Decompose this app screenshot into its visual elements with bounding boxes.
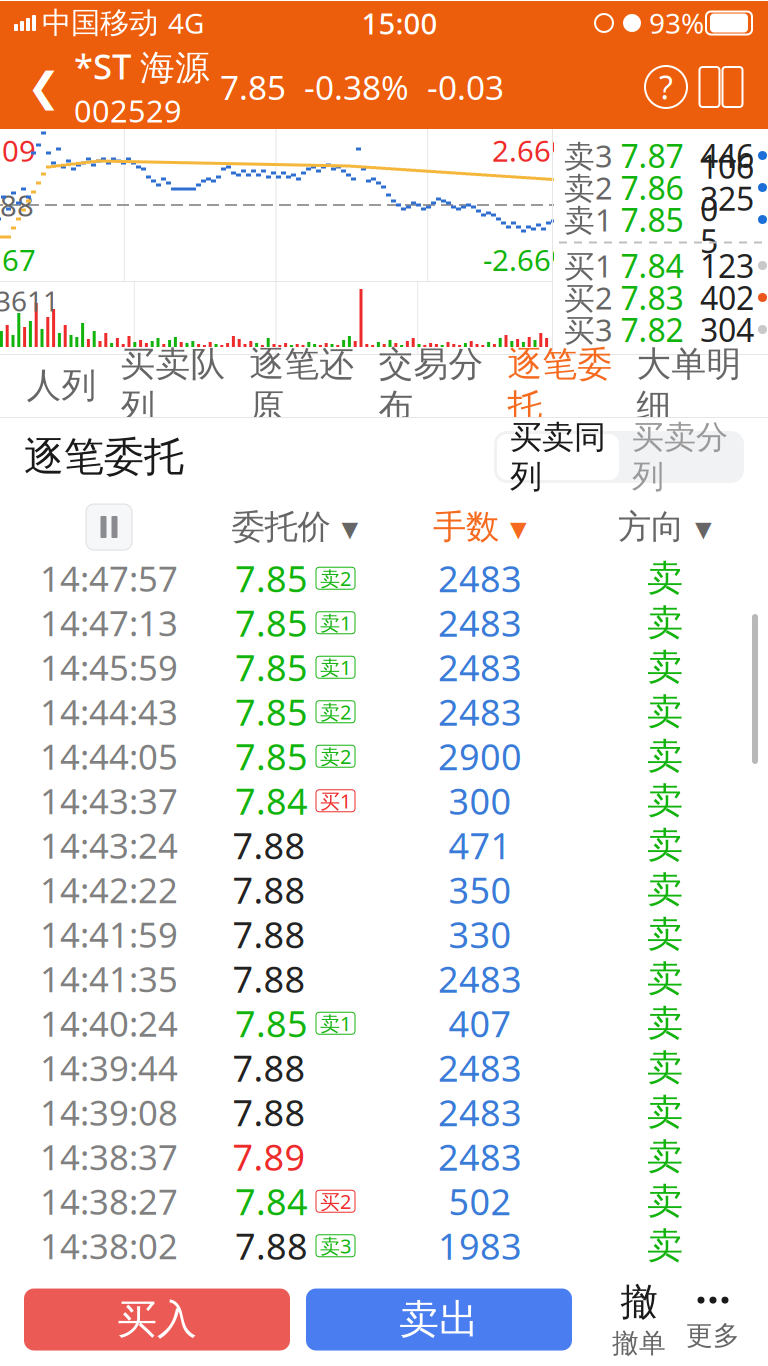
staticText: 330 [448, 910, 511, 958]
button[interactable]: 买入 [24, 1288, 290, 1350]
staticText: 002529 [74, 90, 182, 131]
staticText: 卖2 [320, 698, 351, 725]
staticText: 交易分布 [378, 343, 483, 428]
staticText: 卖2 [564, 167, 613, 208]
staticText: 7.85 [235, 999, 308, 1047]
staticText: 买卖队列 [120, 343, 225, 428]
staticText: 卖3 [564, 135, 613, 176]
staticText: 4G [168, 4, 204, 42]
staticText: 3611 [0, 282, 59, 319]
staticText: 卖2 [320, 565, 351, 592]
staticText: 14:47:57 [40, 555, 178, 601]
staticText: 更多 [686, 1319, 740, 1352]
staticText: 2900 [438, 732, 522, 780]
staticText: 卖 [647, 690, 683, 734]
button[interactable]: 返回 [14, 47, 74, 127]
staticText: 2483 [438, 1088, 522, 1136]
button[interactable]: 人列 [14, 355, 108, 417]
staticText: 7.88 [232, 910, 305, 958]
staticText: 7.85 [235, 732, 308, 780]
staticText: 买1 [320, 787, 351, 814]
staticText: 350 [448, 866, 511, 914]
staticText: 大单明细 [636, 343, 741, 428]
button[interactable]: 帮助 [644, 65, 688, 109]
button[interactable]: 暂停 [86, 504, 132, 550]
staticText: 7.85 -0.38% -0.03 [220, 65, 504, 109]
staticText: 方向 ▾ [618, 506, 712, 547]
staticText: 7.84 [235, 777, 308, 825]
staticText: 卖 [647, 779, 683, 823]
staticText: ❮ [27, 64, 61, 110]
staticText: 买卖分列 [632, 418, 728, 496]
button[interactable]: 委托价 ▾ [205, 504, 385, 550]
staticText: 7.87 [620, 134, 683, 177]
staticText: 卖 [647, 1179, 683, 1223]
staticText: 7.85 [235, 688, 308, 736]
button[interactable]: 更多 [676, 1284, 750, 1354]
staticText: 卖 [647, 957, 683, 1001]
staticText: 卖1 [564, 199, 613, 240]
staticText: 7.82 [620, 308, 683, 351]
staticText: 卖 [647, 601, 683, 645]
staticText: 卖 [647, 1090, 683, 1134]
staticText: 2483 [438, 554, 522, 602]
staticText: 2483 [438, 599, 522, 647]
button[interactable]: 撤 [602, 1284, 676, 1354]
staticText: 14:38:37 [40, 1134, 178, 1180]
staticText: 14:40:24 [40, 1000, 178, 1046]
staticText: 手数 ▾ [433, 506, 527, 547]
staticText: 买卖同列 [510, 418, 606, 496]
button[interactable]: 切换布局 [688, 57, 754, 117]
staticText: 2483 [438, 955, 522, 1003]
staticText: 卖 [647, 823, 683, 867]
staticText: 买2 [320, 1188, 351, 1215]
staticText: 402 [700, 276, 754, 319]
button[interactable]: 逐笔委托 [495, 355, 624, 417]
staticText: 7.85 [235, 599, 308, 647]
staticText: 7.88 [232, 1044, 305, 1092]
staticText: *ST 海源 [74, 43, 210, 89]
button[interactable]: 大单明细 [624, 355, 753, 417]
staticText: 2483 [438, 688, 522, 736]
staticText: 3255 [700, 177, 754, 262]
button[interactable]: 交易分布 [366, 355, 495, 417]
staticText: 2.66% [492, 131, 575, 170]
staticText: 1983 [438, 1222, 522, 1270]
staticText: 逐笔委托 [24, 432, 184, 481]
staticText: 7.85 [235, 643, 308, 691]
staticText: 7.88 [232, 821, 305, 869]
staticText: 407 [448, 999, 511, 1047]
button[interactable]: 手数 ▾ [385, 504, 575, 550]
staticText: 14:42:22 [40, 867, 178, 913]
staticText: 14:43:24 [40, 822, 178, 868]
staticText: 14:44:05 [40, 733, 178, 779]
staticText: 撤单 [612, 1327, 666, 1360]
button[interactable]: 买卖分列 [619, 434, 741, 480]
staticText: 买3 [564, 309, 613, 350]
button[interactable]: 买卖队列 [108, 355, 237, 417]
button[interactable]: 买卖同列 [497, 434, 619, 480]
staticText: 人列 [26, 364, 96, 407]
staticText: 14:41:59 [40, 911, 178, 957]
staticText: 7.84 [235, 1177, 308, 1225]
staticText: 7.85 [235, 554, 308, 602]
staticText: 2483 [438, 1044, 522, 1092]
staticText: 卖 [647, 1001, 683, 1045]
button[interactable]: 逐笔还原 [237, 355, 366, 417]
staticText: ? [659, 66, 673, 108]
staticText: 7.67 [0, 240, 36, 279]
staticText: 卖1 [320, 1010, 351, 1037]
staticText: 逐笔委托 [507, 343, 612, 428]
staticText: 买2 [564, 277, 613, 318]
staticText: 8.09 [0, 131, 36, 170]
staticText: 7.88 [232, 955, 305, 1003]
button[interactable]: 卖出 [306, 1288, 572, 1350]
staticText: 卖 [647, 556, 683, 600]
staticText: 卖 [647, 1046, 683, 1090]
staticText: 7.85 [620, 198, 683, 241]
staticText: 7.83 [620, 276, 683, 319]
staticText: 7.84 [620, 244, 683, 287]
staticText: 304 [700, 308, 754, 351]
staticText: 123 [700, 244, 754, 287]
button[interactable]: 方向 ▾ [575, 504, 755, 550]
